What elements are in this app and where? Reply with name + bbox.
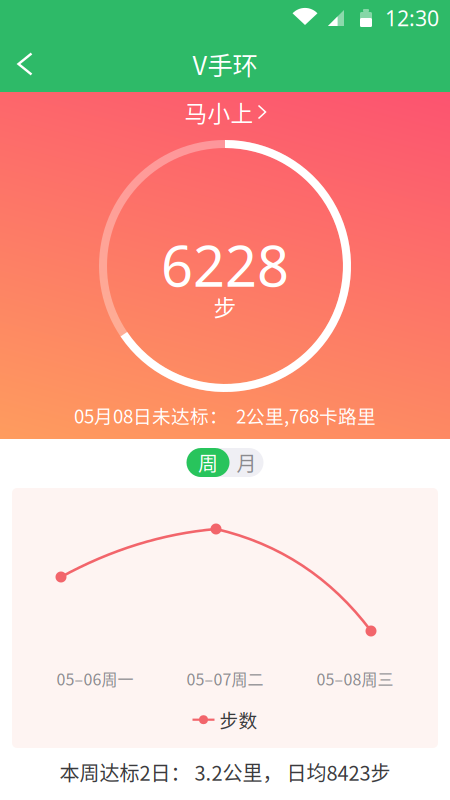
staticText: 05–06周一 (56, 667, 133, 690)
staticText: 05–07周二 (186, 667, 263, 690)
staticText: 步数 (219, 706, 257, 733)
button[interactable]: 马小上 (184, 100, 265, 124)
button[interactable]: 周 (186, 448, 229, 477)
button[interactable]: Back (0, 36, 50, 92)
staticText: 6228 (161, 227, 289, 303)
staticText: 马小上 (184, 96, 253, 128)
button[interactable]: 月 (229, 448, 263, 477)
staticText: 月 (236, 448, 256, 477)
staticText: 12:30 (385, 3, 439, 33)
staticText: 05月08日未达标： 2公里,768卡路里 (74, 402, 376, 429)
staticText: 本周达标2日： 3.2公里， 日均8423步 (59, 757, 390, 786)
staticText: 05–08周三 (316, 667, 393, 690)
staticText: 周 (198, 448, 218, 477)
staticText: 步 (213, 290, 236, 322)
staticText: V手环 (192, 46, 257, 82)
